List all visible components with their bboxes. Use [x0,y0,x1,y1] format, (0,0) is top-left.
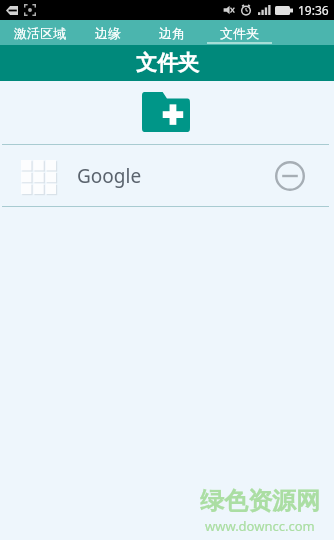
staticText: 绿色资源网 [200,486,320,516]
button[interactable]: Google [0,145,334,206]
staticText: 文件夹 [220,25,259,41]
button[interactable]: Remove [268,154,312,198]
staticText: Google [77,163,142,189]
staticText: 19:36 [298,2,329,18]
button[interactable]: 激活区域 [0,20,79,45]
staticText: 边角 [159,25,185,41]
staticText: 文件夹 [136,50,199,76]
staticText: 激活区域 [14,25,66,41]
button[interactable]: Add folder [142,92,190,132]
staticText: www.downcc.com [205,517,315,535]
staticText: 边缘 [95,25,121,41]
button[interactable]: 边角 [137,20,207,45]
button[interactable]: 边缘 [79,20,137,45]
button[interactable]: 文件夹 [207,20,272,45]
